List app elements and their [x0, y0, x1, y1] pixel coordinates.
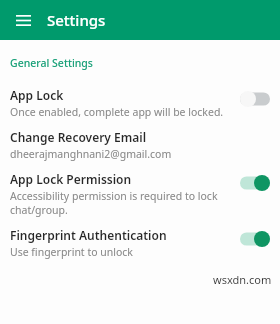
staticText: App Lock	[10, 87, 64, 103]
button[interactable]: App Lock Permission	[0, 168, 280, 224]
staticText: Use fingerprint to unlock	[10, 245, 133, 259]
staticText: Fingerprint Authentication	[10, 227, 167, 243]
button[interactable]: Toggle App Lock Permission	[238, 174, 272, 192]
staticText: dheerajmanghnani2@gmail.com	[10, 147, 172, 161]
button[interactable]: Toggle Fingerprint Authentication	[238, 230, 272, 248]
button[interactable]: App Lock	[0, 84, 280, 126]
staticText: Accessibility permission is required to …	[10, 189, 218, 203]
staticText: chat/group.	[10, 203, 68, 217]
button[interactable]: Change Recovery Email	[0, 126, 280, 168]
staticText: General Settings	[10, 56, 93, 70]
staticText: wsxdn.com	[213, 272, 272, 287]
button[interactable]: Toggle App Lock	[238, 90, 272, 108]
button[interactable]: Open navigation menu	[9, 6, 37, 34]
staticText: Change Recovery Email	[10, 129, 147, 145]
staticText: App Lock Permission	[10, 171, 132, 187]
button[interactable]: Fingerprint Authentication	[0, 224, 280, 266]
staticText: Settings	[47, 10, 106, 30]
staticText: Once enabled, complete app will be locke…	[10, 105, 224, 119]
